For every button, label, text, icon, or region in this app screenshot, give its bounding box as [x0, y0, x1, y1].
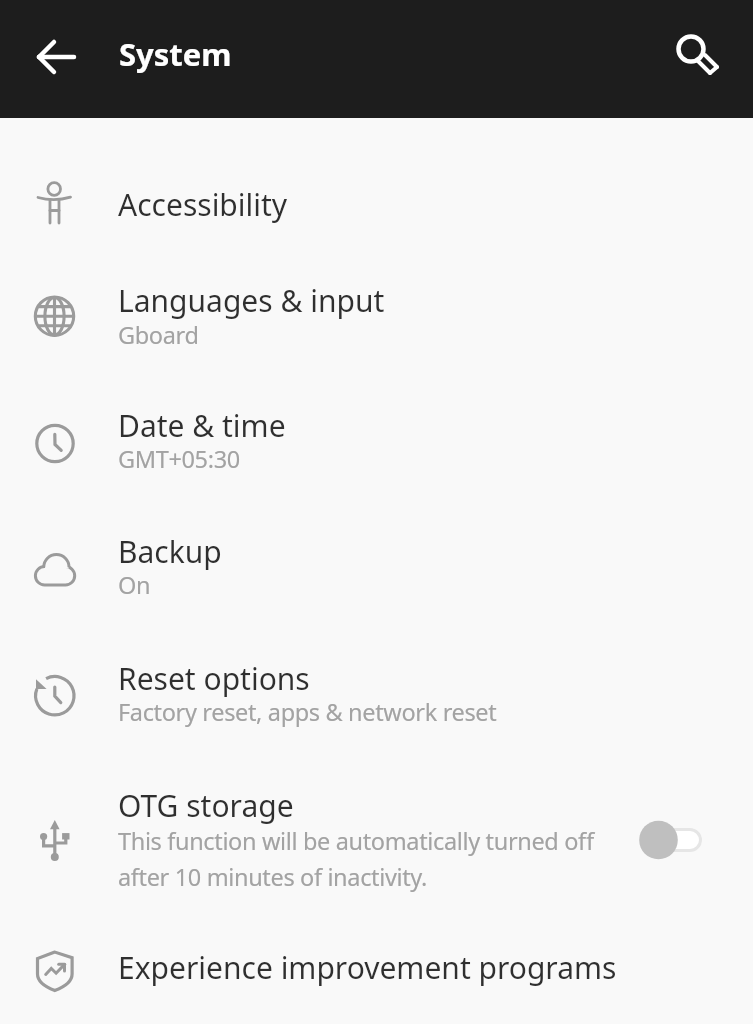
button[interactable]: [0, 262, 753, 367]
staticText: Reset options: [118, 658, 310, 699]
button[interactable]: [0, 770, 753, 915]
staticText: Accessibility: [118, 184, 288, 225]
staticText: System: [119, 33, 232, 75]
button[interactable]: [0, 388, 753, 493]
staticText: Gboard: [118, 319, 199, 351]
staticText: Factory reset, apps & network reset: [118, 696, 497, 728]
button[interactable]: [630, 806, 712, 874]
button[interactable]: [0, 640, 753, 745]
staticText: OTG storage: [118, 785, 294, 826]
button[interactable]: [24, 25, 88, 89]
staticText: Backup: [118, 531, 222, 572]
staticText: This function will be automatically turn…: [118, 825, 594, 857]
button[interactable]: [661, 27, 725, 91]
button[interactable]: [0, 160, 753, 250]
staticText: GMT+05:30: [118, 443, 240, 475]
staticText: Experience improvement programs: [118, 947, 617, 988]
button[interactable]: [0, 935, 753, 1015]
staticText: On: [118, 569, 151, 601]
button[interactable]: [0, 514, 753, 619]
staticText: Date & time: [118, 405, 286, 446]
staticText: after 10 minutes of inactivity.: [118, 861, 427, 893]
staticText: Languages & input: [118, 280, 385, 321]
